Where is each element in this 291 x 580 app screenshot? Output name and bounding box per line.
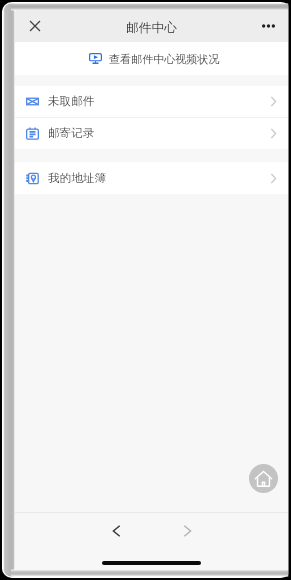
staticText: 邮寄记录 bbox=[48, 126, 95, 141]
button[interactable]: Forward bbox=[172, 516, 202, 546]
button[interactable]: Home bbox=[249, 464, 278, 493]
staticText: 邮件中心 bbox=[126, 20, 177, 36]
staticText: 我的地址簿 bbox=[48, 171, 106, 186]
button[interactable]: Close bbox=[23, 14, 47, 38]
staticText: 未取邮件 bbox=[48, 94, 95, 109]
button[interactable]: 未取邮件 bbox=[15, 86, 288, 117]
button[interactable]: 我的地址簿 bbox=[15, 162, 288, 194]
button[interactable]: More options bbox=[256, 14, 280, 38]
button[interactable]: Back bbox=[101, 516, 131, 546]
staticText: 查看邮件中心视频状况 bbox=[109, 52, 220, 66]
button[interactable]: 查看邮件中心视频状况 bbox=[15, 42, 288, 75]
button[interactable]: 邮寄记录 bbox=[15, 118, 288, 149]
